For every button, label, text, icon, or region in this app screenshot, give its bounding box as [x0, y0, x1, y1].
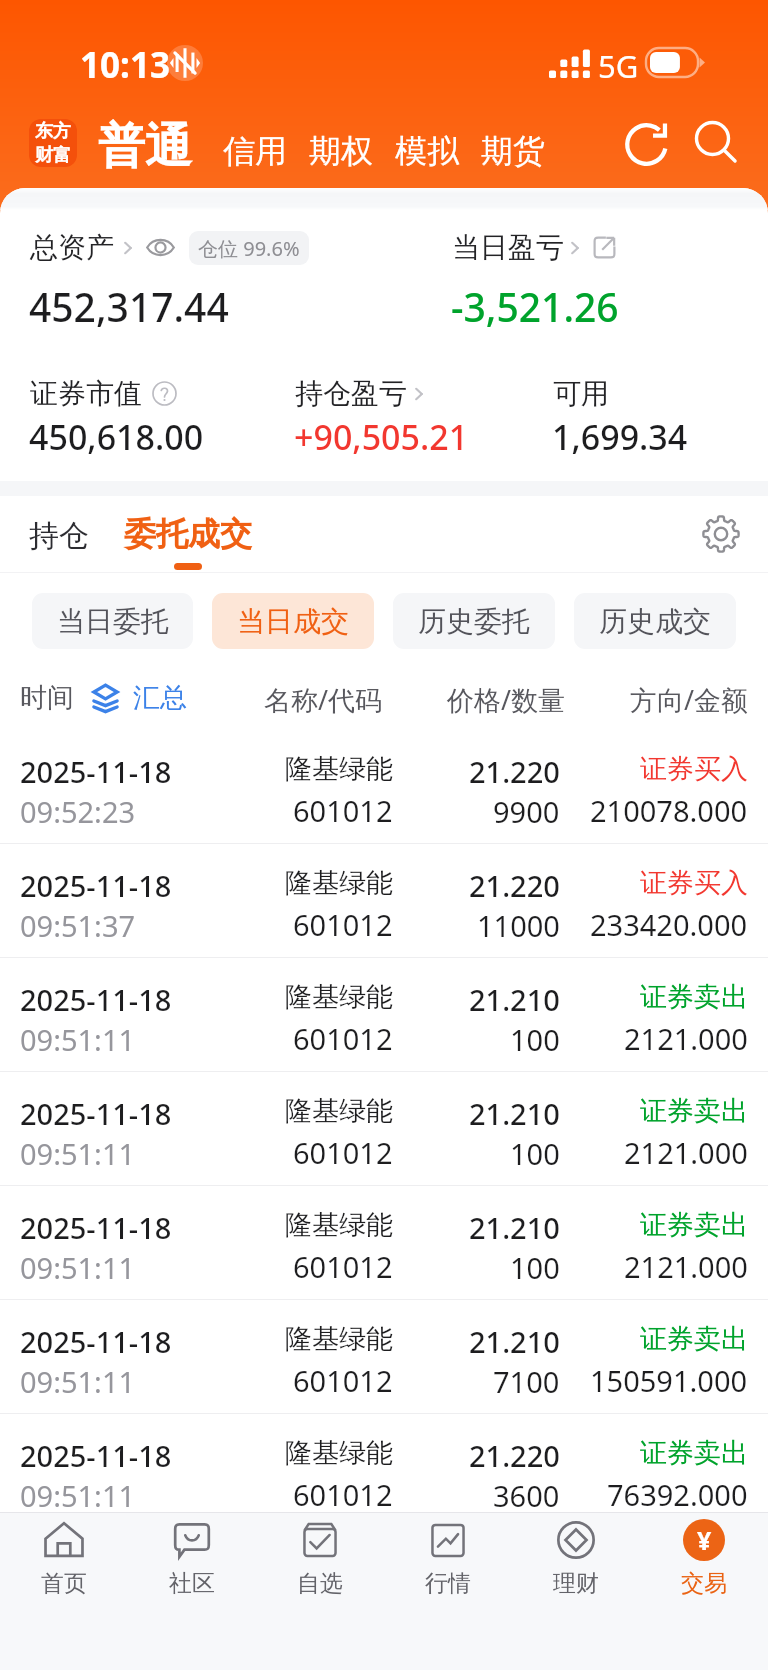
button[interactable]: 2025-11-18	[0, 844, 768, 957]
button[interactable]: ¥	[640, 1513, 768, 1670]
staticText: 2025-11-18	[20, 1094, 172, 1133]
staticText: 100	[510, 1020, 560, 1059]
staticText: 历史委托	[418, 604, 530, 639]
staticText: 2121.000	[624, 1019, 748, 1058]
staticText: 21.220	[469, 866, 560, 905]
button[interactable]: 持仓	[29, 517, 89, 555]
button[interactable]: 总资产	[30, 230, 309, 265]
staticText: 行情	[425, 1569, 471, 1598]
staticText: 21.220	[469, 752, 560, 791]
staticText: 模拟	[395, 131, 459, 171]
staticText: 当日盈亏	[452, 230, 564, 265]
staticText: 601012	[293, 1361, 393, 1400]
staticText: 3600	[493, 1476, 560, 1515]
staticText: 21.220	[469, 1436, 560, 1475]
staticText: 210078.000	[590, 791, 748, 830]
staticText: 601012	[293, 1247, 393, 1286]
staticText: 当日成交	[237, 604, 349, 639]
staticText: 601012	[293, 791, 393, 830]
staticText: 证券卖出	[640, 1322, 748, 1356]
staticText: 隆基绿能	[285, 1094, 393, 1128]
staticText: 233420.000	[590, 905, 748, 944]
staticText: 2025-11-18	[20, 980, 172, 1019]
staticText: 09:51:11	[20, 1248, 136, 1287]
staticText: 隆基绿能	[285, 980, 393, 1014]
button[interactable]: 2025-11-18	[0, 1414, 768, 1512]
staticText: 期权	[309, 131, 373, 171]
staticText: +90,505.21	[294, 414, 469, 460]
staticText: 09:52:23	[20, 792, 136, 831]
staticText: 2025-11-18	[20, 1208, 172, 1247]
staticText: 5G	[598, 45, 639, 87]
button[interactable]: 首页	[0, 1513, 128, 1670]
staticText: ¥	[697, 1523, 712, 1557]
button[interactable]: 理财	[512, 1513, 640, 1670]
button[interactable]: 2025-11-18	[0, 1072, 768, 1185]
staticText: 隆基绿能	[285, 1208, 393, 1242]
button[interactable]: 当日成交	[212, 593, 374, 649]
button[interactable]: 自选	[256, 1513, 384, 1670]
staticText: 证券卖出	[640, 1208, 748, 1242]
staticText: 可用	[553, 376, 609, 411]
staticText: 证券卖出	[640, 1094, 748, 1128]
button[interactable]: 期权	[309, 131, 373, 171]
staticText: 2025-11-18	[20, 866, 172, 905]
staticText: 财富	[35, 144, 71, 167]
staticText: 证券卖出	[640, 980, 748, 1014]
button[interactable]: 当日委托	[32, 593, 193, 649]
staticText: 时间	[20, 681, 74, 715]
staticText: 7100	[493, 1362, 560, 1401]
button[interactable]: Refresh	[618, 112, 680, 174]
button[interactable]: 历史委托	[393, 593, 555, 649]
staticText: 09:51:11	[20, 1476, 136, 1515]
button[interactable]: 2025-11-18	[0, 1186, 768, 1299]
button[interactable]: 历史成交	[574, 593, 736, 649]
staticText: 21.210	[469, 1208, 560, 1247]
staticText: 21.210	[469, 1094, 560, 1133]
button[interactable]: 普通	[98, 117, 192, 176]
staticText: 601012	[293, 905, 393, 944]
button[interactable]: 期货	[481, 131, 545, 171]
staticText: 当日委托	[57, 604, 169, 639]
staticText: 2025-11-18	[20, 1436, 172, 1475]
staticText: 持仓盈亏	[295, 376, 407, 411]
staticText: 1,699.34	[552, 414, 688, 460]
staticText: 2025-11-18	[20, 752, 172, 791]
button[interactable]: 行情	[384, 1513, 512, 1670]
button[interactable]: 持仓盈亏	[295, 376, 429, 411]
button[interactable]: 当日盈亏	[452, 230, 616, 265]
staticText: 100	[510, 1134, 560, 1173]
staticText: 交易	[681, 1569, 727, 1598]
button[interactable]: 社区	[128, 1513, 256, 1670]
staticText: 自选	[297, 1569, 343, 1598]
button[interactable]: 2025-11-18	[0, 958, 768, 1071]
staticText: 证券买入	[640, 866, 748, 900]
staticText: 普通	[98, 117, 192, 176]
staticText: 证券买入	[640, 752, 748, 786]
button[interactable]: Settings	[695, 508, 747, 560]
staticText: 452,317.44	[29, 280, 229, 333]
button[interactable]: 委托成交	[124, 514, 252, 570]
button[interactable]: 模拟	[395, 131, 459, 171]
staticText: 76392.000	[607, 1475, 748, 1514]
staticText: 10:13	[80, 41, 170, 89]
staticText: 09:51:37	[20, 906, 136, 945]
button[interactable]: Search	[685, 112, 747, 174]
staticText: 2025-11-18	[20, 1322, 172, 1361]
button[interactable]: 汇总	[92, 681, 187, 715]
staticText: 信用	[223, 131, 287, 171]
staticText: 601012	[293, 1475, 393, 1514]
staticText: 社区	[169, 1569, 215, 1598]
button[interactable]: 2025-11-18	[0, 1300, 768, 1413]
staticText: 9900	[493, 792, 560, 831]
staticText: 隆基绿能	[285, 1436, 393, 1470]
staticText: -3,521.26	[451, 280, 619, 333]
staticText: 2121.000	[624, 1247, 748, 1286]
staticText: 期货	[481, 131, 545, 171]
staticText: 21.210	[469, 980, 560, 1019]
button[interactable]: 2025-11-18	[0, 730, 768, 843]
button[interactable]: 信用	[223, 131, 287, 171]
staticText: 隆基绿能	[285, 1322, 393, 1356]
staticText: 委托成交	[124, 514, 252, 554]
staticText: 隆基绿能	[285, 866, 393, 900]
